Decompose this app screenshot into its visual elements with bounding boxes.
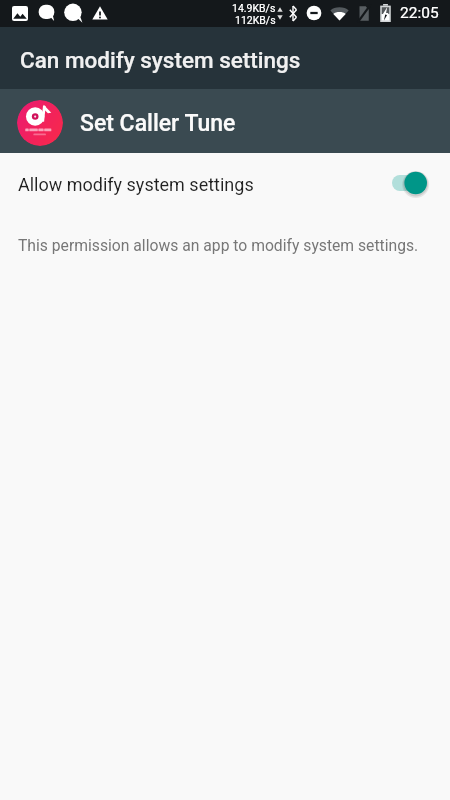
button[interactable]: Allow modify system settings toggle <box>392 168 428 198</box>
staticText: Allow modify system settings <box>18 174 254 195</box>
staticText: 22:05 <box>400 4 439 22</box>
staticText: Can modify system settings <box>20 47 301 73</box>
button[interactable]: Allow modify system settings <box>0 153 450 215</box>
button[interactable]: Set Caller Tune <box>0 89 450 153</box>
staticText: 112KB/s <box>235 14 276 26</box>
staticText: Set Caller Tune <box>80 110 236 137</box>
staticText: This permission allows an app to modify … <box>18 236 419 254</box>
staticText: 14.9KB/s <box>232 2 276 14</box>
